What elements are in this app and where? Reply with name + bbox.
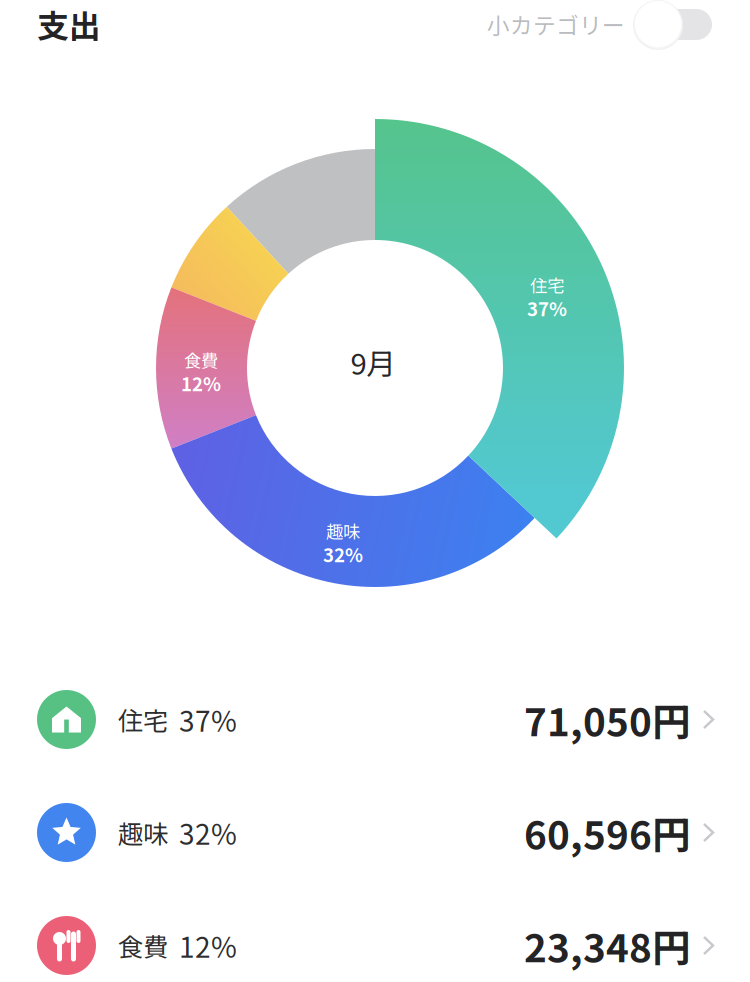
button[interactable]: 趣味 [0, 776, 750, 889]
staticText: 37% [527, 294, 567, 321]
staticText: 71,050円 [524, 691, 691, 747]
staticText: 食費 [184, 347, 218, 372]
staticText: 趣味 [118, 814, 168, 851]
button[interactable]: 住宅 [0, 663, 750, 776]
staticText: 60,596円 [524, 804, 691, 860]
staticText: 小カテゴリー [487, 8, 625, 40]
button[interactable]: 食費 [0, 889, 750, 982]
staticText: 37% [179, 699, 237, 740]
staticText: 趣味 [326, 518, 360, 543]
staticText: 32% [323, 540, 363, 567]
button[interactable]: 小カテゴリー [625, 0, 724, 48]
staticText: 23,348円 [524, 917, 691, 973]
staticText: 12% [179, 925, 237, 966]
staticText: 9月 [350, 341, 395, 383]
staticText: 食費 [118, 927, 168, 964]
staticText: 支出 [37, 1, 101, 47]
staticText: 12% [181, 369, 221, 396]
staticText: 住宅 [118, 701, 168, 738]
staticText: 住宅 [530, 272, 564, 297]
staticText: 32% [179, 812, 237, 853]
